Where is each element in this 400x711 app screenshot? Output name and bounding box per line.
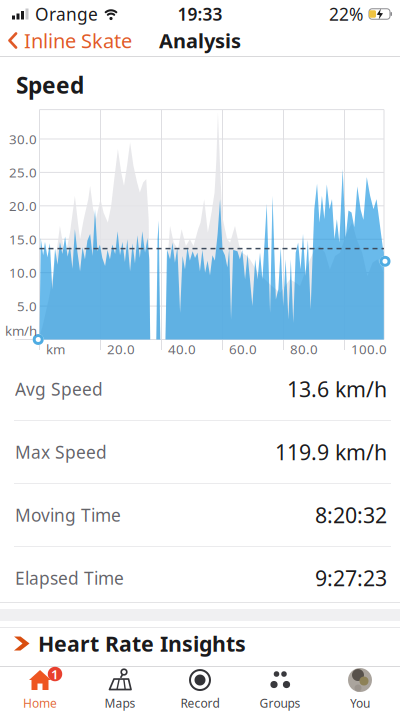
staticText: Heart Rate Insights bbox=[38, 629, 246, 658]
staticText: 10.0 bbox=[9, 264, 37, 281]
staticText: You bbox=[350, 695, 370, 711]
staticText: 13.6 km/h bbox=[287, 375, 387, 403]
staticText: Groups bbox=[259, 695, 300, 711]
staticText: Orange bbox=[35, 2, 98, 25]
staticText: Max Speed bbox=[15, 440, 107, 463]
staticText: km bbox=[46, 340, 65, 358]
staticText: Record bbox=[180, 695, 219, 711]
staticText: Moving Time bbox=[15, 503, 121, 526]
staticText: 100.0 bbox=[351, 340, 387, 358]
staticText: 80.0 bbox=[290, 340, 318, 358]
staticText: 15.0 bbox=[9, 230, 37, 248]
button[interactable]: Inline Skate bbox=[0, 27, 132, 54]
staticText: 30.0 bbox=[9, 130, 37, 148]
staticText: 5.0 bbox=[17, 297, 37, 315]
button[interactable]: 1 bbox=[0, 667, 80, 711]
button[interactable]: You bbox=[320, 667, 400, 711]
button[interactable]: Maps bbox=[80, 667, 160, 711]
button[interactable]: Groups bbox=[240, 667, 320, 711]
staticText: 8:20:32 bbox=[315, 501, 387, 529]
staticText: 20.0 bbox=[107, 340, 135, 358]
staticText: 19:33 bbox=[177, 2, 222, 25]
staticText: Home bbox=[23, 695, 57, 711]
staticText: 20.0 bbox=[9, 197, 37, 215]
staticText: 22% bbox=[329, 2, 363, 25]
staticText: Elapsed Time bbox=[15, 566, 124, 589]
staticText: 60.0 bbox=[229, 340, 257, 358]
button[interactable]: Record bbox=[160, 667, 240, 711]
staticText: Avg Speed bbox=[15, 377, 103, 400]
staticText: 40.0 bbox=[168, 340, 196, 358]
staticText: 25.0 bbox=[9, 163, 37, 181]
staticText: 9:27:23 bbox=[315, 564, 387, 592]
staticText: Analysis bbox=[159, 27, 241, 54]
staticText: Maps bbox=[104, 695, 135, 711]
staticText: Speed bbox=[16, 70, 84, 100]
staticText: km/h bbox=[5, 322, 37, 339]
staticText: 119.9 km/h bbox=[275, 438, 387, 466]
staticText: 1 bbox=[51, 665, 59, 683]
staticText: Inline Skate bbox=[24, 27, 132, 54]
button[interactable]: Heart Rate Insights bbox=[0, 629, 400, 658]
